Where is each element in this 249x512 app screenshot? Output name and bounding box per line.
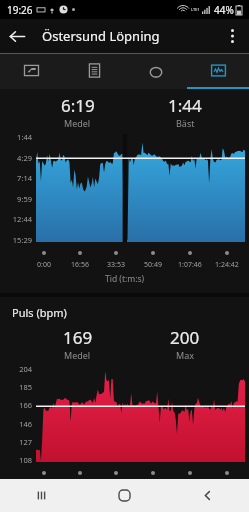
staticText: 33:53 — [107, 260, 125, 270]
staticText: 169 — [63, 326, 93, 349]
button[interactable]: Map — [0, 54, 63, 87]
staticText: Bäst — [176, 117, 195, 129]
staticText: 146 — [19, 419, 32, 429]
button[interactable]: Recent apps — [0, 479, 83, 512]
staticText: 185 — [19, 382, 32, 392]
staticText: 1:24:42 — [215, 260, 239, 270]
button[interactable]: Charts — [187, 54, 249, 87]
staticText: Medel — [64, 349, 91, 361]
staticText: 127 — [19, 437, 32, 447]
staticText: 0:00 — [37, 260, 51, 270]
staticText: 12:44 — [12, 214, 32, 224]
button[interactable]: Laps — [125, 54, 187, 87]
staticText: 4:29 — [17, 153, 32, 163]
button[interactable]: Back — [0, 19, 34, 53]
staticText: Puls (bpm) — [12, 305, 67, 320]
staticText: 204 — [19, 364, 32, 374]
staticText: 50:49 — [144, 260, 162, 270]
staticText: 9:59 — [17, 194, 32, 204]
staticText: Max — [176, 349, 194, 361]
staticText: LTE1 — [191, 7, 200, 12]
staticText: 15:29 — [12, 235, 32, 245]
button[interactable]: Home — [83, 479, 166, 512]
staticText: 108 — [19, 455, 32, 465]
staticText: 166 — [19, 400, 32, 410]
staticText: 7:14 — [17, 173, 32, 183]
staticText: 1:07:46 — [178, 260, 202, 270]
staticText: 200 — [170, 326, 200, 349]
button[interactable]: More options — [215, 19, 249, 53]
staticText: Tid (t:m:s) — [105, 273, 145, 285]
staticText: 16:56 — [71, 260, 89, 270]
staticText: 6:19 — [61, 94, 95, 117]
staticText: 1:44 — [17, 132, 32, 142]
button[interactable]: Details — [63, 54, 125, 87]
button[interactable]: Back — [166, 479, 249, 512]
staticText: Östersund Löpning — [42, 27, 160, 45]
staticText: Medel — [64, 117, 91, 129]
staticText: 1:44 — [168, 94, 202, 117]
staticText: 19:26 — [7, 3, 33, 17]
staticText: 44% — [214, 3, 234, 17]
